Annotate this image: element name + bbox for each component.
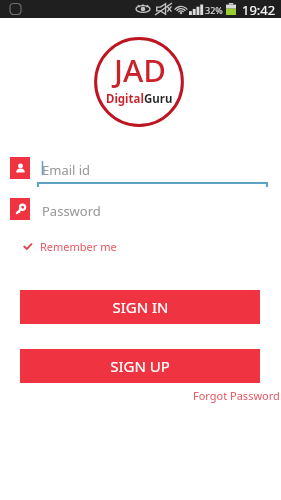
- button[interactable]: Remember me: [20, 237, 119, 256]
- button[interactable]: Forgot Password: [192, 387, 281, 404]
- staticText: JAD: [114, 49, 166, 91]
- staticText: SIGN UP: [110, 356, 170, 376]
- button[interactable]: SIGN IN: [20, 290, 260, 324]
- staticText: Guru: [144, 91, 173, 107]
- staticText: SIGN IN: [112, 297, 169, 317]
- staticText: Email id: [42, 161, 91, 179]
- button[interactable]: Password: [10, 195, 268, 223]
- staticText: Password: [42, 202, 101, 220]
- other: Password: [10, 198, 30, 220]
- other: User name: [10, 157, 30, 179]
- button[interactable]: User name: [10, 153, 268, 190]
- button[interactable]: SIGN UP: [20, 349, 260, 383]
- staticText: 19:42: [242, 1, 276, 19]
- staticText: Remember me: [40, 239, 117, 254]
- staticText: 32%: [205, 4, 223, 16]
- staticText: Digital: [106, 91, 144, 107]
